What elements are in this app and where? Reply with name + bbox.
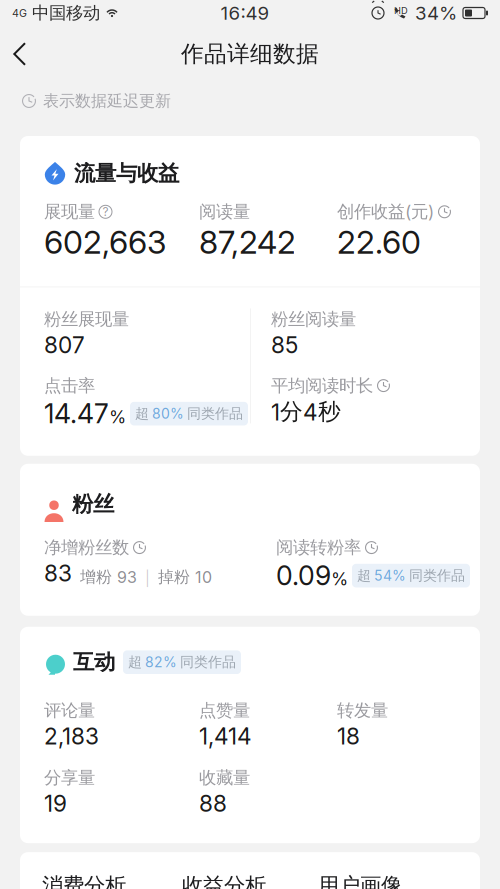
staticText: 602,663 xyxy=(44,223,166,261)
staticText: 2,183 xyxy=(44,722,99,750)
staticText: 阅读转粉率 xyxy=(276,537,361,558)
staticText: 收益分析 xyxy=(182,872,266,889)
staticText: 表示数据延迟更新 xyxy=(43,91,171,111)
staticText: | xyxy=(145,569,150,587)
staticText: 粉丝展现量 xyxy=(44,308,129,330)
staticText: 粉丝 xyxy=(72,491,114,518)
staticText: 掉粉 10 xyxy=(158,567,212,587)
staticText: 88 xyxy=(199,790,227,817)
staticText: 平均阅读时长 xyxy=(271,375,373,396)
staticText: 0.09 xyxy=(276,559,331,592)
staticText: 转发量 xyxy=(337,700,388,721)
staticText: 创作收益(元) xyxy=(337,201,434,223)
button[interactable]: 收益分析 xyxy=(182,872,318,889)
staticText: 18 xyxy=(337,722,360,750)
staticText: 粉丝阅读量 xyxy=(271,308,356,330)
staticText: 807 xyxy=(44,331,85,359)
staticText: 互动 xyxy=(73,649,115,676)
staticText: 流量与收益 xyxy=(74,160,179,187)
staticText: 评论量 xyxy=(44,700,95,721)
staticText: 同类作品 xyxy=(187,405,243,422)
staticText: 54% xyxy=(374,567,406,584)
staticText: 超 xyxy=(135,405,149,422)
staticText: 分享量 xyxy=(44,767,95,789)
staticText: 87,242 xyxy=(199,223,296,261)
staticText: 14.47 xyxy=(44,397,109,430)
staticText: 同类作品 xyxy=(180,653,236,671)
button[interactable]: Back xyxy=(0,31,39,77)
staticText: 80% xyxy=(152,405,184,422)
staticText: 22.60 xyxy=(337,223,421,261)
staticText: ? xyxy=(102,205,108,219)
button[interactable]: 消费分析 xyxy=(42,872,182,889)
staticText: % xyxy=(109,406,126,428)
staticText: 阅读量 xyxy=(199,201,250,223)
staticText: 中国移动 xyxy=(32,2,100,24)
staticText: % xyxy=(331,568,348,590)
staticText: 消费分析 xyxy=(42,872,126,889)
staticText: 点赞量 xyxy=(199,700,250,721)
staticText: 82% xyxy=(145,654,177,671)
staticText: 作品详细数据 xyxy=(181,40,319,68)
staticText: HD xyxy=(394,5,408,16)
button[interactable]: 用户画像 xyxy=(318,872,402,889)
staticText: 同类作品 xyxy=(409,567,465,584)
staticText: 1,414 xyxy=(199,722,252,750)
staticText: 19 xyxy=(44,790,67,817)
staticText: 点击率 xyxy=(44,375,95,396)
staticText: 4G xyxy=(12,6,27,19)
staticText: 超 xyxy=(357,567,371,584)
staticText: 收藏量 xyxy=(199,767,250,789)
staticText: 34% xyxy=(415,2,457,24)
staticText: 展现量 xyxy=(44,201,95,223)
staticText: 1分4秒 xyxy=(271,397,341,426)
staticText: 85 xyxy=(271,331,298,359)
staticText: 增粉 93 xyxy=(80,567,137,587)
staticText: 超 xyxy=(128,653,142,671)
staticText: 83 xyxy=(44,559,72,587)
staticText: 用户画像 xyxy=(318,872,402,889)
staticText: 16:49 xyxy=(220,2,269,24)
staticText: 净增粉丝数 xyxy=(44,537,129,558)
